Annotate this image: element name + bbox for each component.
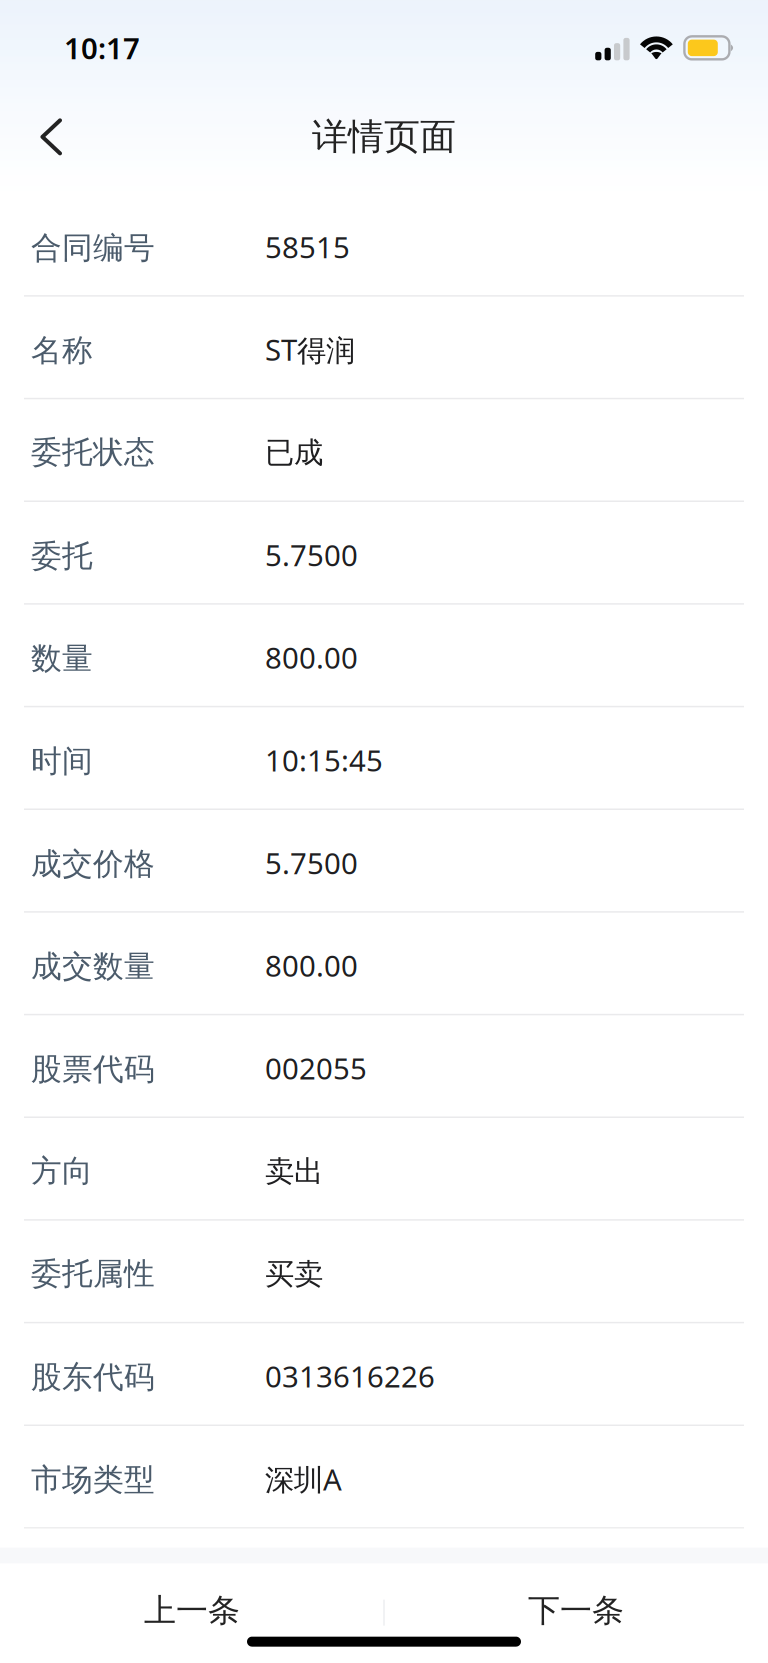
button[interactable]: 下一条 bbox=[384, 1564, 768, 1658]
staticText: 名称 bbox=[31, 332, 93, 369]
staticText: 详情页面 bbox=[312, 115, 456, 159]
staticText: 合同编号 bbox=[31, 229, 155, 267]
staticText: 方向 bbox=[31, 1152, 93, 1190]
staticText: 数量 bbox=[31, 640, 93, 677]
staticText: 800.00 bbox=[265, 638, 358, 677]
staticText: 0313616226 bbox=[265, 1357, 435, 1396]
staticText: 市场类型 bbox=[31, 1461, 155, 1499]
staticText: 5.7500 bbox=[265, 843, 358, 882]
staticText: 时间 bbox=[31, 742, 93, 780]
staticText: ST得润 bbox=[265, 330, 355, 369]
button[interactable]: 上一条 bbox=[0, 1564, 384, 1658]
staticText: 卖出 bbox=[265, 1153, 323, 1189]
staticText: 800.00 bbox=[265, 946, 358, 985]
staticText: 买卖 bbox=[265, 1256, 323, 1292]
staticText: 已成 bbox=[265, 435, 323, 471]
staticText: 58515 bbox=[265, 227, 350, 266]
staticText: 下一条 bbox=[528, 1591, 624, 1630]
staticText: 10:17 bbox=[64, 28, 140, 67]
staticText: 成交数量 bbox=[31, 948, 155, 985]
staticText: 股票代码 bbox=[31, 1050, 155, 1088]
button[interactable]: Back bbox=[18, 98, 84, 175]
staticText: 委托 bbox=[31, 537, 93, 575]
staticText: 深圳A bbox=[265, 1460, 342, 1499]
staticText: 成交价格 bbox=[31, 845, 155, 883]
staticText: 5.7500 bbox=[265, 535, 358, 574]
staticText: 股东代码 bbox=[31, 1358, 155, 1396]
staticText: 002055 bbox=[265, 1049, 367, 1088]
staticText: 委托属性 bbox=[31, 1255, 155, 1293]
staticText: 上一条 bbox=[144, 1591, 240, 1630]
staticText: 10:15:45 bbox=[265, 741, 383, 780]
staticText: 委托状态 bbox=[31, 434, 155, 471]
